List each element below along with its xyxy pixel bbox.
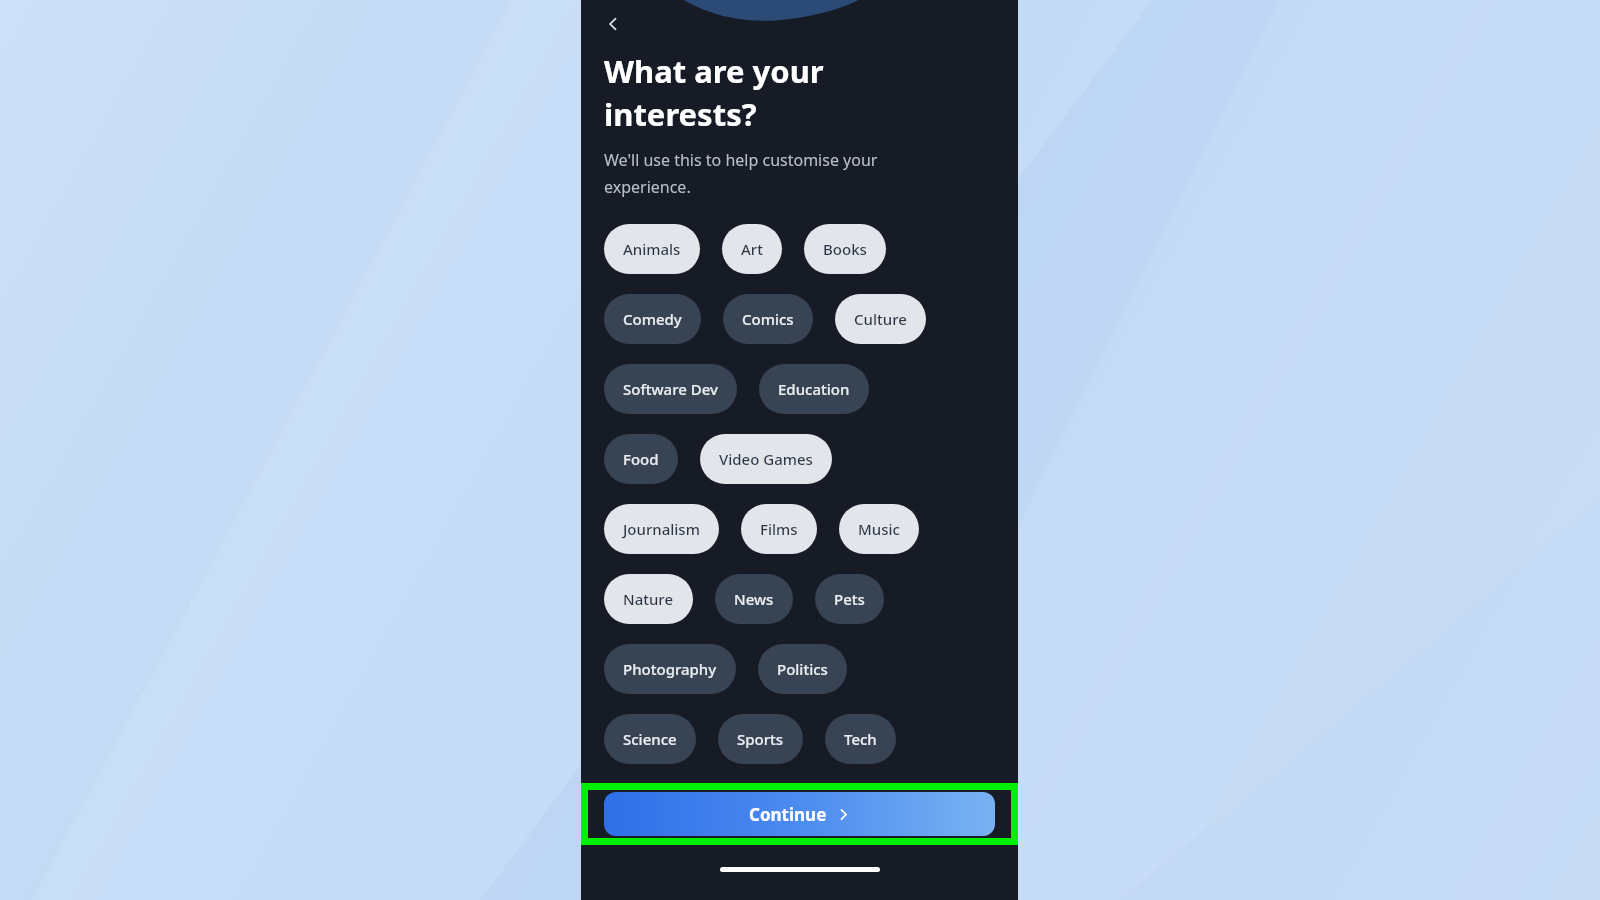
- staticText: What are your interests?: [604, 50, 824, 135]
- button[interactable]: Pets: [815, 574, 884, 624]
- button[interactable]: Education: [759, 364, 869, 414]
- staticText: Culture: [854, 309, 907, 329]
- staticText: Nature: [623, 589, 674, 609]
- staticText: Science: [623, 729, 677, 749]
- button[interactable]: Music: [839, 504, 919, 554]
- staticText: Video Games: [719, 449, 813, 469]
- button[interactable]: Video Games: [700, 434, 832, 484]
- staticText: Films: [760, 519, 798, 539]
- staticText: Books: [823, 239, 867, 259]
- staticText: Comedy: [623, 309, 682, 329]
- button[interactable]: Art: [722, 224, 782, 274]
- staticText: Comics: [742, 309, 794, 329]
- staticText: Art: [741, 239, 763, 259]
- staticText: Music: [858, 519, 900, 539]
- button[interactable]: Comics: [723, 294, 813, 344]
- button[interactable]: Tech: [825, 714, 896, 764]
- button[interactable]: Books: [804, 224, 886, 274]
- staticText: Animals: [623, 239, 681, 259]
- button[interactable]: Animals: [604, 224, 700, 274]
- button[interactable]: Software Dev: [604, 364, 737, 414]
- staticText: Journalism: [623, 519, 700, 539]
- button[interactable]: Food: [604, 434, 678, 484]
- button[interactable]: Films: [741, 504, 817, 554]
- staticText: Continue: [749, 803, 827, 826]
- staticText: Software Dev: [623, 379, 718, 399]
- staticText: News: [734, 589, 774, 609]
- button[interactable]: Sports: [718, 714, 803, 764]
- staticText: Pets: [834, 589, 865, 609]
- button[interactable]: Continue: [604, 792, 995, 836]
- staticText: Education: [778, 379, 850, 399]
- staticText: Tech: [844, 729, 877, 749]
- staticText: We'll use this to help customise your ex…: [604, 149, 878, 198]
- button[interactable]: Politics: [758, 644, 847, 694]
- staticText: Photography: [623, 659, 717, 679]
- button[interactable]: Back: [593, 4, 633, 44]
- button[interactable]: Comedy: [604, 294, 701, 344]
- staticText: Politics: [777, 659, 828, 679]
- staticText: Sports: [737, 729, 784, 749]
- button[interactable]: Science: [604, 714, 696, 764]
- button[interactable]: Nature: [604, 574, 693, 624]
- staticText: Food: [623, 449, 659, 469]
- button[interactable]: News: [715, 574, 793, 624]
- button[interactable]: Journalism: [604, 504, 719, 554]
- button[interactable]: Culture: [835, 294, 926, 344]
- button[interactable]: Photography: [604, 644, 736, 694]
